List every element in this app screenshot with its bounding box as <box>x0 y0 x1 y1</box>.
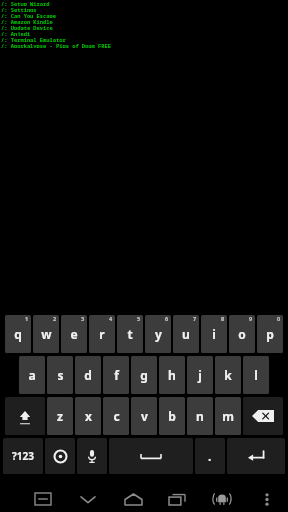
button[interactable]: f <box>103 356 129 394</box>
staticText: 7 <box>193 315 197 322</box>
staticText: b <box>168 408 176 424</box>
staticText: /: Update Device <box>1 24 53 30</box>
button[interactable]: j <box>187 356 213 394</box>
button[interactable]: p <box>257 315 283 353</box>
staticText: k <box>224 367 232 383</box>
staticText: s <box>57 367 64 383</box>
staticText: 2 <box>53 315 57 322</box>
staticText: 3 <box>81 315 85 322</box>
button[interactable]: n <box>187 397 213 435</box>
staticText: /: Anjedi <box>1 30 31 36</box>
staticText: r <box>99 326 105 342</box>
staticText: i <box>212 326 216 342</box>
button[interactable]: o <box>229 315 255 353</box>
button[interactable]: Space <box>109 438 193 474</box>
staticText: t <box>127 326 133 342</box>
button[interactable]: v <box>131 397 157 435</box>
staticText: z <box>57 408 63 424</box>
staticText: f <box>114 367 119 383</box>
button[interactable]: Backspace <box>243 397 283 435</box>
staticText: g <box>140 367 148 383</box>
staticText: 8 <box>221 315 225 322</box>
staticText: /: Settings <box>1 6 37 12</box>
button[interactable]: m <box>215 397 241 435</box>
staticText: 5 <box>137 315 141 322</box>
staticText: c <box>113 408 120 424</box>
staticText: q <box>14 326 22 342</box>
button[interactable]: c <box>103 397 129 435</box>
button[interactable]: Back <box>73 486 103 512</box>
button[interactable]: Recents <box>162 486 192 512</box>
button[interactable]: Home <box>118 486 148 512</box>
staticText: l <box>254 367 258 383</box>
staticText: . <box>208 448 212 464</box>
staticText: ?123 <box>12 449 34 463</box>
staticText: /: Terminal Emulator <box>1 36 66 42</box>
staticText: /: Can You Escape <box>1 12 56 18</box>
staticText: w <box>41 326 52 342</box>
staticText: v <box>141 408 148 424</box>
button[interactable]: Voice input <box>77 438 107 474</box>
button[interactable]: q <box>5 315 31 353</box>
button[interactable]: . <box>195 438 225 474</box>
button[interactable]: d <box>75 356 101 394</box>
button[interactable]: w <box>33 315 59 353</box>
staticText: n <box>196 408 204 424</box>
button[interactable]: Shift <box>5 397 45 435</box>
button[interactable]: u <box>173 315 199 353</box>
staticText: 1 <box>25 315 29 322</box>
staticText: /: Amazon Kindle <box>1 18 53 24</box>
button[interactable]: t <box>117 315 143 353</box>
staticText: y <box>155 326 162 342</box>
button[interactable]: x <box>75 397 101 435</box>
staticText: /: Aporkalypse - Pigs of Doom FREE <box>1 42 111 48</box>
staticText: e <box>70 326 78 342</box>
button[interactable]: ?123 <box>3 438 43 474</box>
button[interactable]: i <box>201 315 227 353</box>
staticText: 9 <box>249 315 253 322</box>
button[interactable]: More options <box>252 486 282 512</box>
staticText: o <box>238 326 246 342</box>
staticText: j <box>198 367 202 383</box>
button[interactable]: r <box>89 315 115 353</box>
staticText: d <box>84 367 92 383</box>
button[interactable]: s <box>47 356 73 394</box>
button[interactable]: z <box>47 397 73 435</box>
button[interactable]: Input settings <box>45 438 75 474</box>
staticText: 6 <box>165 315 169 322</box>
staticText: 4 <box>109 315 113 322</box>
button[interactable]: h <box>159 356 185 394</box>
staticText: u <box>182 326 190 342</box>
button[interactable]: e <box>61 315 87 353</box>
staticText: p <box>266 326 274 342</box>
button[interactable]: g <box>131 356 157 394</box>
button[interactable]: b <box>159 397 185 435</box>
staticText: /: Setup Wizard <box>1 0 50 6</box>
button[interactable]: Enter <box>227 438 285 474</box>
button[interactable]: a <box>19 356 45 394</box>
staticText: m <box>222 408 234 424</box>
staticText: 0 <box>277 315 281 322</box>
button[interactable]: Menu <box>28 486 58 512</box>
button[interactable]: l <box>243 356 269 394</box>
staticText: h <box>168 367 176 383</box>
button[interactable]: Android <box>207 486 237 512</box>
staticText: a <box>28 367 36 383</box>
button[interactable]: y <box>145 315 171 353</box>
button[interactable]: k <box>215 356 241 394</box>
staticText: x <box>85 408 92 424</box>
